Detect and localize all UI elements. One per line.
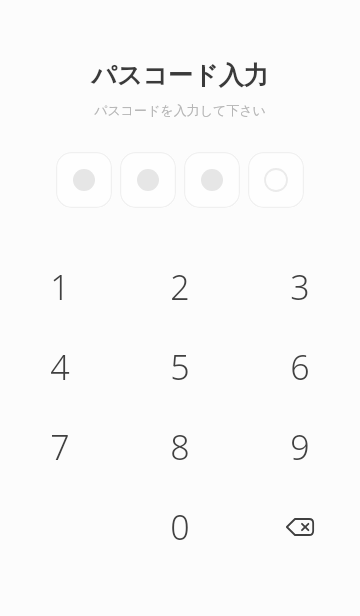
button[interactable]: 2 [143, 250, 217, 324]
staticText: 8 [170, 424, 190, 470]
staticText: 2 [170, 264, 190, 310]
staticText: 3 [290, 264, 310, 310]
button[interactable]: 3 [263, 250, 337, 324]
staticText: 4 [50, 344, 70, 390]
button[interactable]: 5 [143, 330, 217, 404]
staticText: 0 [170, 504, 190, 550]
button[interactable]: 8 [143, 410, 217, 484]
staticText: 5 [170, 344, 190, 390]
staticText: 9 [290, 424, 310, 470]
button[interactable]: 7 [23, 410, 97, 484]
staticText: パスコード入力 [91, 60, 269, 91]
button[interactable]: 0 [143, 490, 217, 564]
button[interactable]: 1 [23, 250, 97, 324]
button[interactable]: Backspace [263, 490, 337, 564]
button[interactable]: 6 [263, 330, 337, 404]
button[interactable]: 4 [23, 330, 97, 404]
staticText: 7 [50, 424, 70, 470]
button[interactable]: 9 [263, 410, 337, 484]
staticText: 1 [50, 264, 70, 310]
staticText: パスコードを入力して下さい [94, 102, 266, 118]
staticText: 6 [290, 344, 310, 390]
